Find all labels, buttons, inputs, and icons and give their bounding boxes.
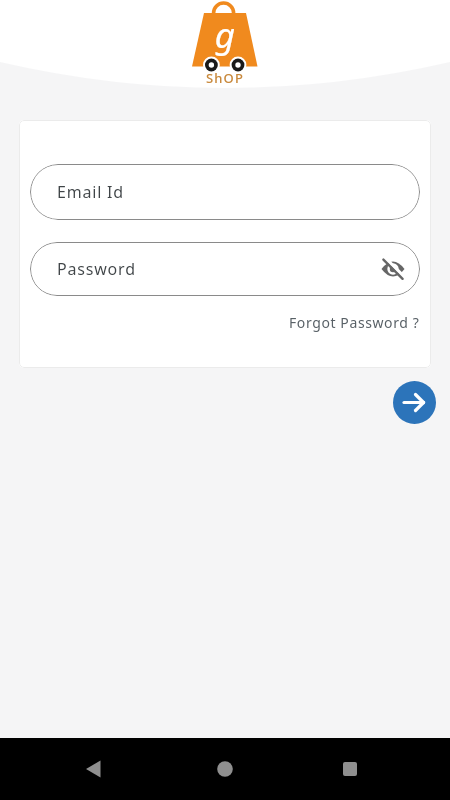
button[interactable]: Forgot Password ? (289, 313, 420, 332)
button[interactable]: Email Id (30, 164, 420, 220)
staticText: Email Id (57, 181, 124, 203)
button[interactable] (335, 754, 365, 784)
button[interactable]: Password (30, 242, 420, 296)
staticText: ShOP (0, 69, 450, 87)
staticText: Password (57, 258, 136, 280)
button[interactable] (393, 381, 436, 424)
staticText: g (205, 11, 245, 59)
button[interactable] (78, 754, 108, 784)
button[interactable] (210, 754, 240, 784)
